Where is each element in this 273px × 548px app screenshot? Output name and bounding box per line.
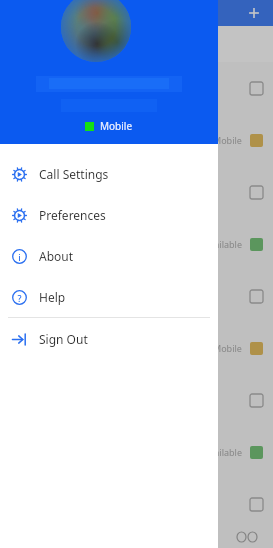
button[interactable] (0, 62, 273, 114)
button[interactable]: Call Settings (0, 153, 218, 194)
staticText: ? (17, 292, 22, 304)
button[interactable]: Preferences (0, 194, 218, 235)
button[interactable]: i (0, 235, 218, 276)
button[interactable]: Mobile (0, 322, 273, 374)
button[interactable] (0, 374, 273, 426)
button[interactable] (0, 478, 273, 530)
staticText: Call Settings (39, 166, 109, 182)
staticText: Mobile (100, 119, 133, 133)
button[interactable]: Mobile (0, 114, 273, 166)
button[interactable]: Available (0, 218, 273, 270)
button[interactable]: Add contact (247, 6, 261, 20)
button[interactable]: ? (0, 276, 218, 317)
staticText: Preferences (39, 207, 106, 223)
button[interactable]: Available (0, 426, 273, 478)
staticText: About (39, 248, 74, 264)
staticText: Available (204, 238, 242, 250)
staticText: Mobile (213, 134, 242, 146)
staticText: i (18, 251, 21, 263)
button[interactable] (0, 270, 273, 322)
button[interactable] (0, 166, 273, 218)
staticText: Help (39, 289, 66, 305)
staticText: Sign Out (39, 331, 88, 347)
staticText: Available (204, 446, 242, 458)
staticText: Mobile (213, 342, 242, 354)
button[interactable]: Sign Out (0, 318, 218, 359)
